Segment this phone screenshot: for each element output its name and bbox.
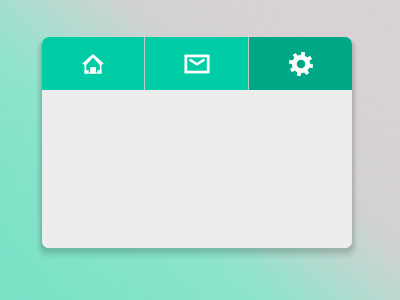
button[interactable]: Mail <box>145 37 248 90</box>
button[interactable]: Home <box>42 37 144 90</box>
button[interactable]: Settings <box>249 37 352 90</box>
